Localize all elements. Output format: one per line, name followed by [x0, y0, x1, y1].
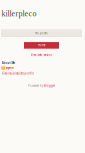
button[interactable]: Blogger: [44, 84, 55, 87]
staticText: View web version: [30, 53, 52, 57]
staticText: Byron: [6, 66, 14, 70]
staticText: About Me: [1, 61, 15, 65]
staticText: Powered by: [28, 84, 44, 87]
staticText: No posts.: [35, 32, 48, 35]
button[interactable]: Home: [24, 42, 59, 49]
staticText: Blogger: [44, 84, 55, 87]
staticText: killerpleco: [1, 9, 36, 18]
button[interactable]: View my complete profile: [1, 72, 33, 75]
staticText: B: [2, 66, 4, 70]
staticText: View my complete profile: [1, 72, 33, 75]
button[interactable]: View web version: [30, 53, 52, 57]
button[interactable]: B: [1, 66, 14, 70]
staticText: Home: [38, 44, 45, 47]
